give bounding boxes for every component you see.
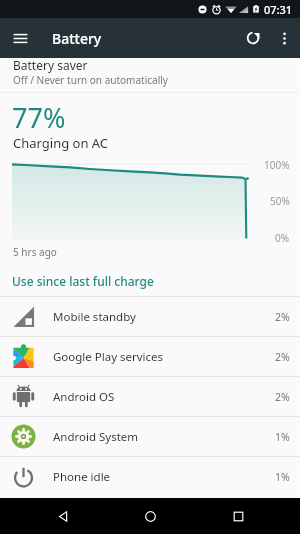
button[interactable]: Refresh: [236, 18, 269, 58]
staticText: Phone idle: [53, 469, 111, 485]
button[interactable]: Use since last full charge: [0, 268, 300, 294]
staticText: Mobile standby: [53, 309, 136, 325]
staticText: 07:31: [264, 2, 293, 17]
button[interactable]: Android OS: [0, 377, 300, 416]
staticText: 100%: [264, 158, 290, 172]
staticText: Off / Never turn on automatically: [13, 73, 168, 87]
button[interactable]: Back: [38, 498, 88, 534]
staticText: 50%: [270, 194, 290, 208]
staticText: 2%: [275, 310, 290, 324]
staticText: Battery saver: [13, 57, 88, 73]
staticText: 2%: [275, 390, 290, 404]
button[interactable]: Home: [125, 498, 175, 534]
staticText: Google Play services: [53, 349, 164, 365]
button[interactable]: Android System: [0, 417, 300, 456]
button[interactable]: Mobile standby: [0, 297, 300, 336]
button[interactable]: Recent apps: [213, 498, 263, 534]
staticText: 1%: [275, 430, 290, 444]
staticText: Android OS: [53, 389, 115, 405]
staticText: 1%: [275, 470, 290, 484]
button[interactable]: Phone idle: [0, 457, 300, 496]
staticText: 0%: [275, 231, 290, 245]
button[interactable]: More options: [269, 18, 300, 58]
staticText: Android System: [53, 429, 139, 445]
staticText: 2%: [275, 350, 290, 364]
staticText: 5 hrs ago: [13, 245, 57, 259]
button[interactable]: Battery saver: [0, 58, 300, 92]
staticText: Charging on AC: [13, 134, 109, 152]
staticText: Use since last full charge: [12, 273, 154, 289]
button[interactable]: Google Play services: [0, 337, 300, 376]
staticText: Battery: [52, 29, 102, 48]
button[interactable]: Navigation menu: [0, 18, 40, 58]
staticText: 77%: [12, 99, 66, 136]
